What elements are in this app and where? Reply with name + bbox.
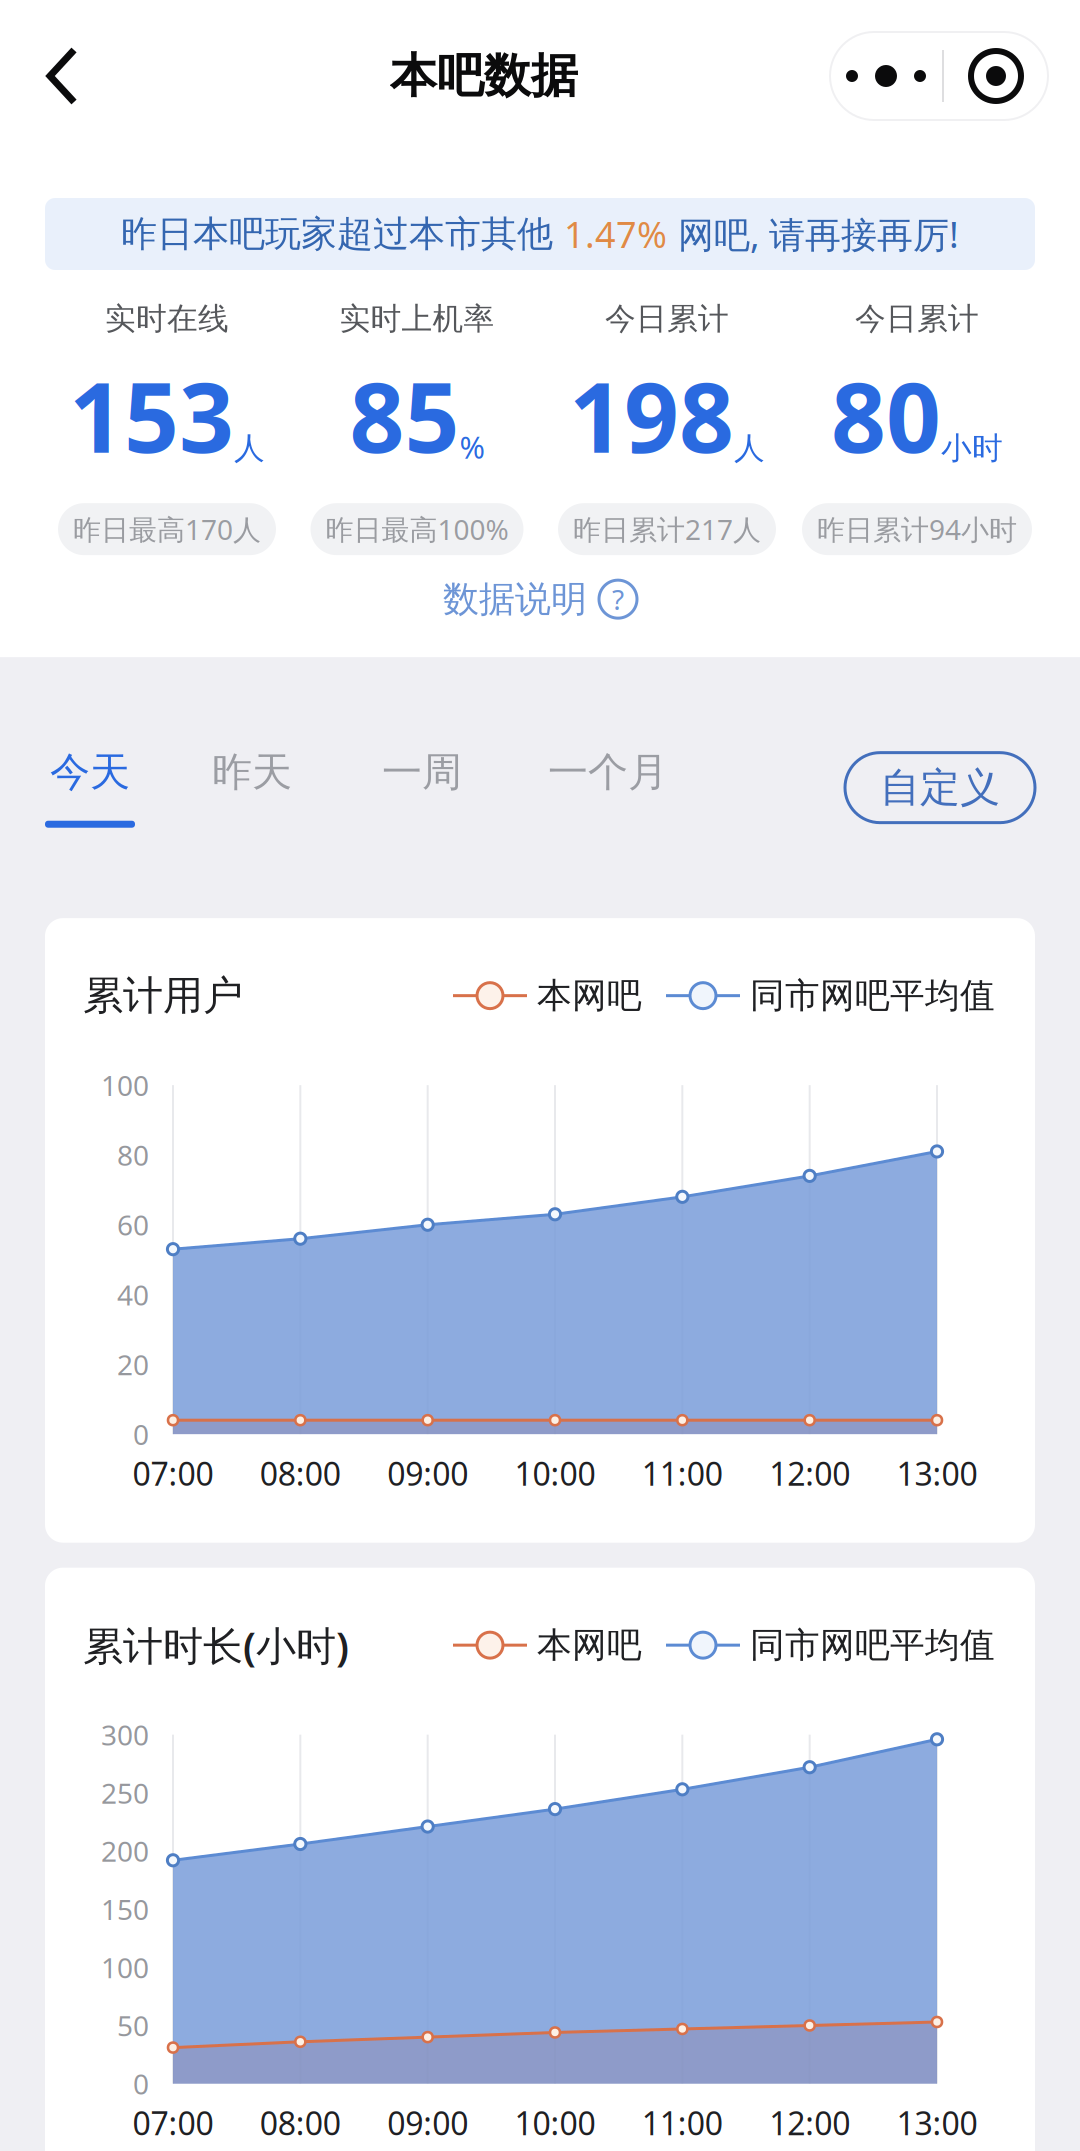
staticText: 50 bbox=[117, 2007, 149, 2044]
staticText: 0 bbox=[133, 2065, 149, 2102]
staticText: 同市网吧平均值 bbox=[750, 1624, 995, 1666]
staticText: 100 bbox=[101, 1067, 149, 1104]
staticText: 昨日最高100% bbox=[325, 511, 508, 548]
staticText: 累计用户 bbox=[83, 971, 243, 1020]
staticText: 200 bbox=[101, 1832, 149, 1870]
staticText: 198 bbox=[569, 352, 734, 479]
staticText: 一个月 bbox=[548, 748, 668, 797]
staticText: 10:00 bbox=[514, 2102, 595, 2144]
staticText: 昨天 bbox=[212, 748, 292, 797]
staticText: 09:00 bbox=[387, 1452, 468, 1495]
staticText: 昨日累计94小时 bbox=[817, 511, 1017, 548]
staticText: 本网吧 bbox=[537, 974, 642, 1017]
staticText: 一周 bbox=[382, 748, 462, 797]
staticText: 累计时长(小时) bbox=[83, 1619, 349, 1672]
staticText: 今日累计 bbox=[855, 300, 979, 338]
staticText: 100 bbox=[101, 1949, 149, 1986]
button[interactable]: 今天 bbox=[45, 725, 207, 851]
staticText: 昨日累计217人 bbox=[573, 511, 761, 548]
staticText: 13:00 bbox=[896, 1452, 977, 1495]
staticText: 网吧, 请再接再厉! bbox=[667, 210, 959, 258]
button[interactable]: 昨天 bbox=[207, 725, 377, 851]
staticText: 昨日本吧玩家超过本市其他 bbox=[121, 212, 564, 256]
button[interactable]: 一个月 bbox=[548, 725, 738, 851]
staticText: 0 bbox=[133, 1416, 149, 1453]
staticText: 同市网吧平均值 bbox=[750, 974, 995, 1017]
staticText: 实时在线 bbox=[105, 300, 229, 338]
staticText: 实时上机率 bbox=[339, 300, 494, 338]
staticText: 11:00 bbox=[642, 1452, 723, 1495]
staticText: ? bbox=[612, 581, 624, 618]
staticText: 13:00 bbox=[896, 2102, 977, 2144]
staticText: 08:00 bbox=[260, 2102, 341, 2144]
staticText: 300 bbox=[101, 1716, 149, 1753]
staticText: 10:00 bbox=[514, 1452, 595, 1495]
staticText: % bbox=[459, 426, 484, 467]
button[interactable]: Back bbox=[42, 28, 138, 124]
button[interactable]: 一周 bbox=[377, 725, 548, 851]
staticText: 人 bbox=[234, 429, 265, 467]
staticText: 80 bbox=[831, 352, 941, 479]
staticText: 自定义 bbox=[880, 763, 1000, 812]
button[interactable]: More options bbox=[830, 32, 1048, 120]
button[interactable]: 自定义 bbox=[845, 753, 1035, 823]
staticText: 85 bbox=[349, 352, 459, 479]
staticText: 本吧数据 bbox=[390, 47, 578, 105]
staticText: 20 bbox=[117, 1346, 149, 1383]
staticText: 数据说明 bbox=[443, 577, 587, 621]
staticText: 60 bbox=[117, 1206, 149, 1243]
staticText: 今天 bbox=[50, 748, 130, 797]
button[interactable]: 数据说明 bbox=[443, 555, 637, 643]
staticText: 09:00 bbox=[387, 2102, 468, 2144]
staticText: 40 bbox=[117, 1276, 149, 1313]
staticText: 150 bbox=[101, 1891, 149, 1928]
staticText: 人 bbox=[734, 429, 765, 467]
staticText: 07:00 bbox=[132, 2102, 213, 2144]
staticText: 今日累计 bbox=[605, 300, 729, 338]
staticText: 11:00 bbox=[642, 2102, 723, 2144]
staticText: 08:00 bbox=[260, 1452, 341, 1495]
staticText: 昨日最高170人 bbox=[73, 511, 261, 548]
staticText: 12:00 bbox=[769, 1452, 850, 1495]
staticText: 250 bbox=[101, 1774, 149, 1811]
staticText: 80 bbox=[117, 1136, 149, 1174]
staticText: 本网吧 bbox=[537, 1624, 642, 1666]
staticText: 153 bbox=[69, 352, 234, 479]
staticText: 12:00 bbox=[769, 2102, 850, 2144]
staticText: 小时 bbox=[941, 429, 1003, 467]
staticText: 07:00 bbox=[132, 1452, 213, 1495]
staticText: 1.47% bbox=[564, 210, 667, 258]
